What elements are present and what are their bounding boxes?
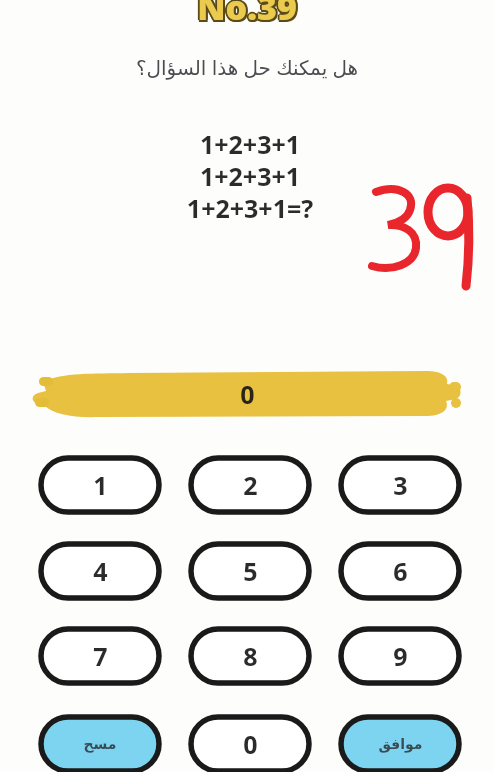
staticText: 8: [243, 639, 258, 673]
staticText: No.39: [172, 0, 322, 32]
button[interactable]: 9: [338, 626, 462, 686]
staticText: 0: [243, 727, 258, 761]
staticText: 5: [243, 554, 258, 588]
staticText: 3: [393, 468, 408, 502]
staticText: 4: [93, 554, 108, 588]
button[interactable]: 0: [33, 368, 461, 420]
staticText: No.39: [171, 0, 321, 32]
staticText: 2: [243, 468, 258, 502]
staticText: No.39: [172, 0, 322, 28]
button[interactable]: 8: [188, 626, 312, 686]
staticText: No.39: [170, 0, 320, 30]
staticText: 0: [240, 377, 255, 411]
button[interactable]: 0: [188, 714, 312, 772]
staticText: 1: [93, 468, 108, 502]
button[interactable]: موافق: [338, 714, 462, 772]
button[interactable]: 6: [338, 541, 462, 601]
button[interactable]: 2: [188, 455, 312, 515]
staticText: No.39: [174, 0, 324, 32]
staticText: No.39: [172, 0, 322, 30]
button[interactable]: 3: [338, 455, 462, 515]
staticText: No.39: [174, 0, 324, 29]
staticText: مسح: [83, 736, 117, 752]
button[interactable]: 1: [38, 455, 162, 515]
button[interactable]: 4: [38, 541, 162, 601]
button[interactable]: 7: [38, 626, 162, 686]
staticText: 6: [393, 554, 408, 588]
button[interactable]: 5: [188, 541, 312, 601]
staticText: No.39: [171, 0, 321, 29]
staticText: 1+2+3+1: [107, 159, 393, 191]
staticText: 9: [393, 639, 408, 673]
staticText: 7: [93, 639, 108, 673]
staticText: هل يمكنك حل هذا السؤال؟: [47, 54, 447, 88]
staticText: No.39: [174, 0, 324, 30]
button[interactable]: مسح: [38, 714, 162, 772]
staticText: 1+2+3+1: [107, 127, 393, 159]
staticText: موافق: [378, 736, 423, 752]
staticText: 1+2+3+1=?: [107, 191, 393, 225]
